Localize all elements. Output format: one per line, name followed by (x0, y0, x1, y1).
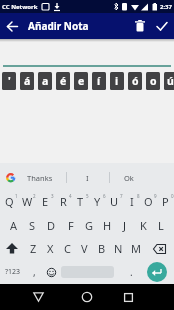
staticText: A (10, 218, 18, 233)
button[interactable]: A (4, 213, 23, 237)
button[interactable]: Q (0, 189, 18, 213)
staticText: 2 (33, 193, 36, 199)
button[interactable]: G (80, 213, 98, 237)
button[interactable]: H (98, 213, 116, 237)
staticText: I (130, 194, 134, 209)
button[interactable]: R (54, 189, 72, 213)
button[interactable]: B (93, 237, 110, 260)
button[interactable]: Z (24, 237, 42, 260)
button[interactable]: ú (164, 72, 174, 90)
staticText: . (130, 265, 133, 279)
staticText: ?123 (5, 267, 21, 277)
button[interactable]: a (38, 72, 52, 90)
button[interactable]: X (42, 237, 59, 260)
staticText: ú (167, 74, 174, 88)
staticText: 8 (137, 193, 140, 199)
staticText: í (97, 74, 101, 88)
button[interactable]: á (20, 72, 34, 90)
button[interactable]: é (56, 72, 70, 90)
button[interactable] (60, 260, 122, 284)
staticText: 4 (69, 193, 72, 199)
staticText: N (114, 241, 123, 256)
button[interactable]: F (61, 213, 80, 237)
button[interactable]: P (157, 189, 174, 213)
staticText: M (131, 241, 141, 256)
button[interactable] (43, 260, 60, 284)
staticText: a (42, 74, 49, 88)
staticText: H (103, 218, 112, 233)
staticText: X (47, 241, 54, 256)
staticText: 0 (171, 193, 174, 199)
staticText: V (81, 241, 88, 256)
button[interactable]: E (36, 189, 54, 213)
staticText: CC Network (2, 3, 38, 11)
button[interactable]: Ok (124, 173, 134, 183)
staticText: T (77, 194, 84, 209)
button[interactable]: Y (89, 189, 106, 213)
button[interactable]: S (23, 213, 42, 237)
staticText: 1 (15, 193, 18, 199)
staticText: 3 (51, 193, 54, 199)
button[interactable]: U (106, 189, 123, 213)
button[interactable]: . (122, 260, 140, 284)
staticText: 7 (120, 193, 123, 199)
staticText: R (60, 194, 67, 209)
button[interactable]: K (134, 213, 152, 237)
button[interactable] (0, 237, 24, 260)
button[interactable]: I (86, 173, 89, 183)
button[interactable]: e (74, 72, 88, 90)
button[interactable]: o (146, 72, 160, 90)
staticText: B (98, 241, 106, 256)
button[interactable] (0, 14, 24, 38)
staticText: ' (8, 74, 11, 88)
button[interactable] (144, 237, 174, 260)
button[interactable] (75, 284, 99, 310)
staticText: Añadir Nota (28, 19, 89, 33)
button[interactable]: Thanks (27, 173, 53, 183)
button[interactable]: V (76, 237, 93, 260)
button[interactable]: ó (128, 72, 142, 90)
button[interactable]: O (140, 189, 157, 213)
button[interactable]: W (18, 189, 36, 213)
button[interactable]: , (26, 260, 43, 284)
button[interactable]: ?123 (0, 260, 26, 284)
button[interactable] (116, 284, 140, 310)
button[interactable]: i (110, 72, 124, 90)
staticText: o (150, 74, 157, 88)
staticText: F (68, 218, 74, 233)
button[interactable]: D (42, 213, 61, 237)
button[interactable]: C (59, 237, 76, 260)
staticText: e (78, 74, 85, 88)
staticText: Q (5, 194, 14, 209)
staticText: é (60, 74, 67, 88)
staticText: 6 (103, 193, 106, 199)
button[interactable]: I (123, 189, 140, 213)
button[interactable] (130, 14, 150, 38)
staticText: 2:37 (160, 3, 172, 11)
staticText: Z (30, 241, 37, 256)
button[interactable]: T (72, 189, 89, 213)
button[interactable]: ' (2, 72, 16, 90)
button[interactable] (26, 284, 50, 310)
staticText: S (29, 218, 36, 233)
staticText: L (158, 218, 164, 233)
staticText: 5 (86, 193, 89, 199)
button[interactable] (150, 14, 174, 38)
staticText: , (33, 265, 36, 279)
button[interactable]: L (152, 213, 170, 237)
button[interactable]: J (116, 213, 134, 237)
staticText: O (144, 194, 153, 209)
button[interactable]: M (127, 237, 144, 260)
staticText: E (42, 194, 49, 209)
button[interactable]: N (110, 237, 127, 260)
staticText: i (115, 74, 119, 88)
staticText: K (140, 218, 147, 233)
staticText: D (47, 218, 56, 233)
staticText: U (110, 194, 119, 209)
staticText: á (24, 74, 31, 88)
staticText: 9 (154, 193, 157, 199)
button[interactable]: í (92, 72, 106, 90)
staticText: W (22, 194, 33, 209)
staticText: G (85, 218, 94, 233)
button[interactable] (140, 260, 174, 284)
